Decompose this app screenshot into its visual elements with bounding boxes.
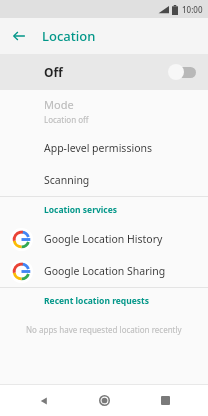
button[interactable]: Mode	[0, 90, 208, 132]
button[interactable]: Scanning	[0, 164, 208, 196]
staticText: Google Location History	[44, 232, 163, 246]
button[interactable]: App-level permissions	[0, 132, 208, 164]
staticText: Location services	[44, 204, 118, 216]
button[interactable]: Back	[27, 385, 61, 416]
staticText: 10:00	[182, 4, 203, 15]
button[interactable]: Google Location History	[0, 223, 208, 255]
staticText: Off	[44, 64, 63, 80]
button[interactable]: Recent apps	[148, 385, 182, 416]
staticText: Location off	[44, 114, 89, 125]
staticText: Google Location Sharing	[44, 264, 166, 278]
staticText: Scanning	[44, 173, 90, 187]
staticText: App-level permissions	[44, 141, 153, 155]
button[interactable]: Home	[87, 385, 121, 416]
staticText: Mode	[44, 97, 74, 112]
staticText: Recent location requests	[44, 295, 150, 307]
button[interactable]: Back	[6, 23, 32, 49]
staticText: Location	[42, 27, 96, 45]
button[interactable]: Off	[0, 54, 208, 90]
button[interactable]: Google Location Sharing	[0, 255, 208, 287]
staticText: No apps have requested location recently	[26, 324, 182, 335]
